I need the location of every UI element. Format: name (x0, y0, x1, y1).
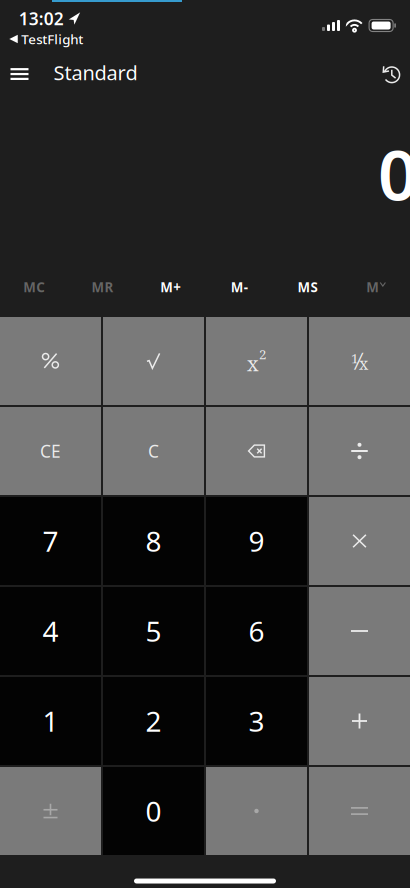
button[interactable]: MS (273, 270, 342, 304)
button[interactable]: 2 (103, 677, 204, 765)
button[interactable]: Divide (309, 407, 410, 495)
button[interactable]: Squared (206, 317, 307, 405)
staticText: 0 (378, 127, 410, 220)
staticText: 5 (145, 612, 161, 650)
button[interactable]: 5 (103, 587, 204, 675)
button[interactable]: Reciprocal (309, 317, 410, 405)
staticText: 13:02 (19, 7, 64, 30)
staticText: 0 (145, 792, 161, 830)
button[interactable]: 1 (0, 677, 101, 765)
staticText: MR (91, 278, 113, 296)
button[interactable]: Equals (309, 767, 410, 855)
staticText: 8 (145, 522, 161, 560)
staticText: 9 (248, 522, 264, 560)
button[interactable]: M- (205, 270, 273, 304)
staticText: 7 (42, 522, 58, 560)
staticText: M- (231, 278, 248, 296)
button[interactable]: Plus minus (0, 767, 101, 855)
staticText: Standard (53, 59, 137, 86)
staticText: C (148, 439, 159, 462)
staticText: MC (23, 278, 45, 296)
staticText: ⁄ (358, 346, 359, 376)
button[interactable]: 7 (0, 497, 101, 585)
button[interactable]: Backspace (206, 407, 307, 495)
button[interactable]: History (370, 53, 410, 97)
button[interactable]: Standard (53, 50, 137, 94)
button[interactable]: 4 (0, 587, 101, 675)
staticText: 3 (248, 702, 264, 740)
button[interactable]: 0 (103, 767, 204, 855)
staticText: 6 (248, 612, 264, 650)
staticText: 1 (42, 702, 58, 740)
button[interactable]: M (342, 270, 410, 304)
staticText: TestFlight (21, 30, 83, 48)
button[interactable]: 9 (206, 497, 307, 585)
button[interactable]: CE (0, 407, 101, 495)
staticText: 2 (259, 345, 266, 363)
button[interactable]: 8 (103, 497, 204, 585)
button[interactable]: Percent (0, 317, 101, 405)
button[interactable]: C (103, 407, 204, 495)
staticText: CE (40, 439, 61, 462)
staticText: x (359, 353, 368, 374)
button[interactable]: 6 (206, 587, 307, 675)
staticText: 4 (42, 612, 58, 650)
staticText: MS (297, 278, 317, 296)
button[interactable]: Minus (309, 587, 410, 675)
button[interactable]: 3 (206, 677, 307, 765)
staticText: x (247, 350, 259, 377)
button[interactable]: Plus (309, 677, 410, 765)
button[interactable]: MC (0, 270, 68, 304)
button[interactable]: MR (68, 270, 137, 304)
staticText: M+ (160, 278, 181, 296)
button[interactable]: M+ (137, 270, 205, 304)
button[interactable]: Menu (0, 52, 41, 96)
button[interactable]: Square root (103, 317, 204, 405)
staticText: 1 (351, 349, 358, 367)
staticText: M (366, 278, 379, 296)
staticText: 2 (145, 702, 161, 740)
button[interactable]: Multiply (309, 497, 410, 585)
